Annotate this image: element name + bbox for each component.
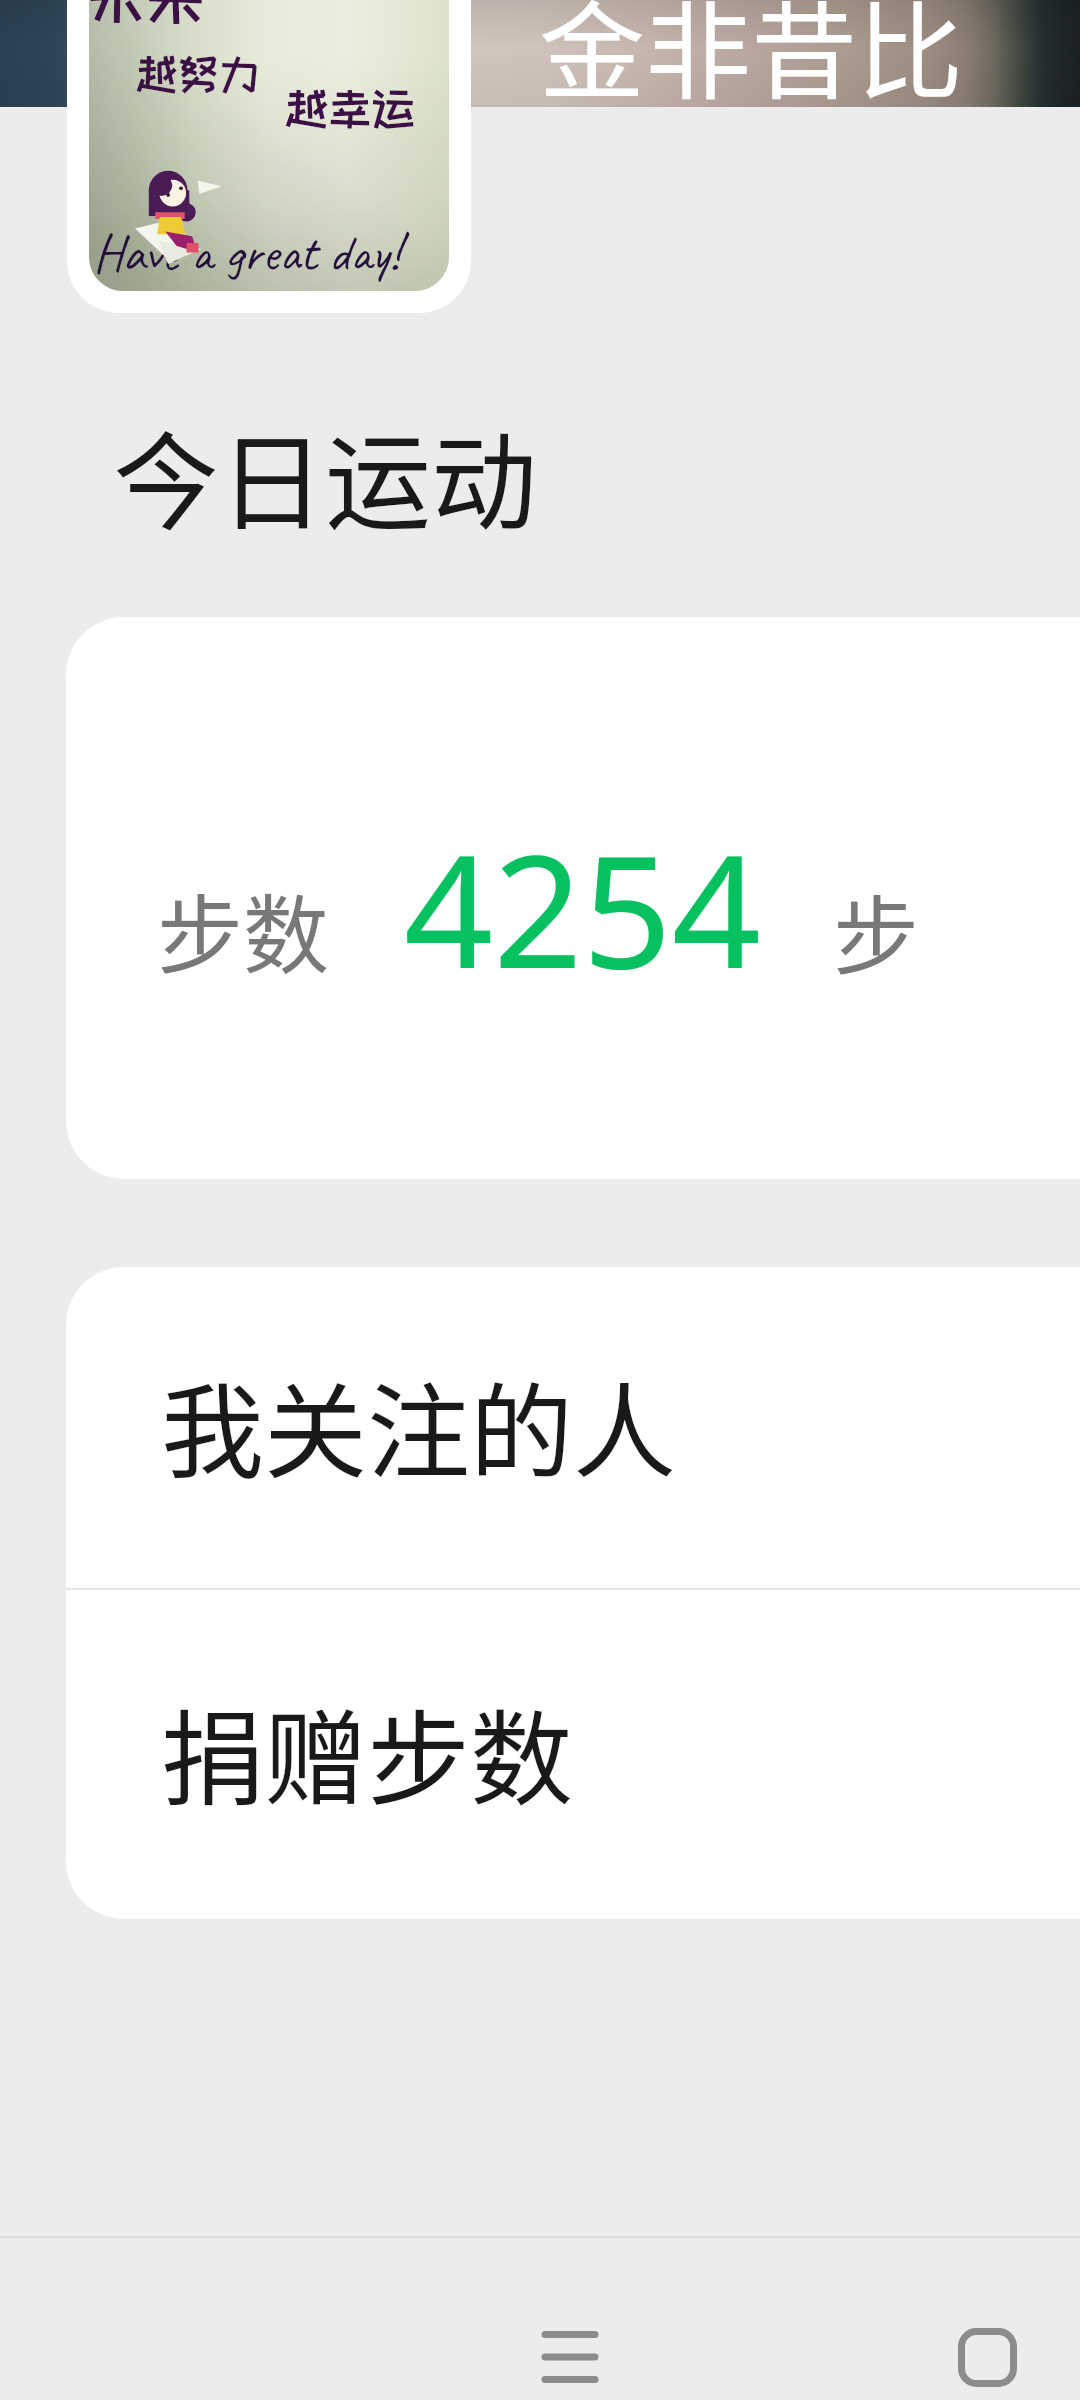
button[interactable]: Profile photo	[67, 0, 471, 313]
staticText: 越幸运	[285, 85, 415, 132]
staticText: 未来	[89, 0, 205, 28]
staticText: Have a great day!	[93, 220, 400, 286]
button[interactable]: 步数	[66, 617, 1080, 1179]
staticText: 步	[833, 868, 919, 993]
staticText: 金非昔比	[539, 0, 963, 120]
staticText: 步数	[157, 867, 329, 992]
button[interactable]: 我关注的人	[66, 1267, 1080, 1588]
staticText: 今日运动	[113, 398, 537, 551]
staticText: 越努力	[136, 51, 261, 96]
staticText: 我关注的人	[161, 1351, 676, 1500]
button[interactable]: Home	[907, 2297, 1067, 2400]
button[interactable]: 捐赠步数	[66, 1590, 1080, 1915]
staticText: 捐赠步数	[161, 1678, 573, 1827]
staticText: 4254	[404, 801, 761, 1013]
button[interactable]: Recent apps	[490, 2297, 650, 2400]
